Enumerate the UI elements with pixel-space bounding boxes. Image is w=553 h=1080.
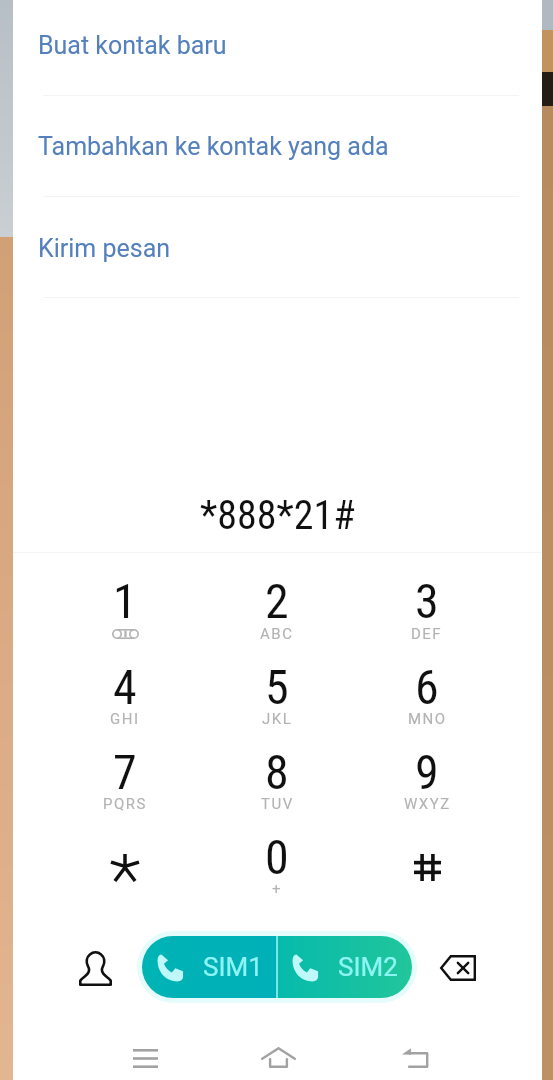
button[interactable]: Recent apps [117, 1030, 173, 1080]
button[interactable]: 3 [377, 568, 477, 648]
staticText: SIM2 [338, 952, 398, 982]
staticText: ABC [260, 625, 294, 643]
button[interactable]: Buat kontak baru [13, 0, 542, 95]
staticText: 5 [265, 659, 289, 715]
button[interactable]: 7 [75, 739, 175, 819]
staticText: TUV [261, 795, 294, 813]
staticText: JKL [262, 710, 293, 728]
button[interactable]: SIM1 [142, 936, 277, 998]
staticText: WXYZ [404, 795, 451, 813]
staticText: 1 [113, 573, 137, 629]
staticText: GHI [110, 710, 140, 728]
button[interactable] [75, 824, 175, 904]
staticText: SIM1 [203, 952, 263, 982]
button[interactable]: Contacts [71, 944, 119, 992]
staticText: Tambahkan ke kontak yang ada [38, 132, 389, 161]
button[interactable]: 4 [75, 654, 175, 734]
button[interactable]: 2 [227, 568, 327, 648]
staticText: 8 [265, 744, 289, 800]
staticText: 2 [265, 573, 289, 629]
button[interactable]: 5 [227, 654, 327, 734]
button[interactable]: Back [388, 1029, 444, 1080]
staticText: PQRS [103, 795, 147, 813]
button[interactable]: SIM2 [277, 936, 412, 998]
button[interactable]: 1 [75, 568, 175, 648]
staticText: + [272, 880, 283, 898]
staticText: DEF [411, 625, 443, 643]
button[interactable]: 0 [227, 824, 327, 904]
staticText: 9 [415, 744, 439, 800]
button[interactable]: Home [250, 1029, 306, 1080]
staticText: *888*21# [200, 492, 356, 539]
staticText: 0 [265, 829, 289, 885]
staticText: MNO [408, 710, 447, 728]
button[interactable]: Backspace [434, 944, 482, 992]
button[interactable]: 8 [227, 739, 327, 819]
button[interactable]: 6 [377, 654, 477, 734]
staticText: 3 [415, 573, 439, 629]
staticText: Kirim pesan [38, 234, 171, 263]
staticText: 7 [113, 744, 137, 800]
staticText: Buat kontak baru [38, 31, 227, 60]
staticText: 6 [415, 659, 439, 715]
button[interactable] [377, 824, 477, 904]
button[interactable]: 9 [377, 739, 477, 819]
staticText: 4 [113, 659, 137, 715]
button[interactable]: Tambahkan ke kontak yang ada [13, 95, 542, 196]
button[interactable]: Kirim pesan [13, 196, 542, 297]
